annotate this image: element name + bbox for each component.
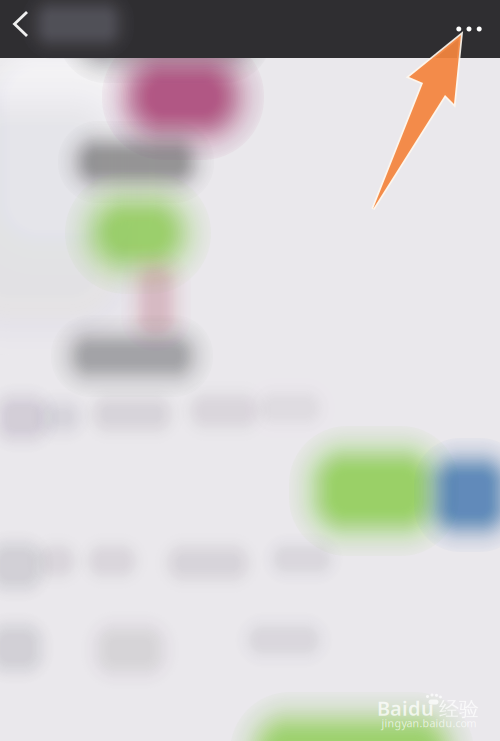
button[interactable]: Back [0,0,44,58]
button[interactable]: More options [441,0,497,58]
staticText: jingyan.baidu.com [381,716,476,730]
staticText: Baidu 经验 [377,695,479,721]
